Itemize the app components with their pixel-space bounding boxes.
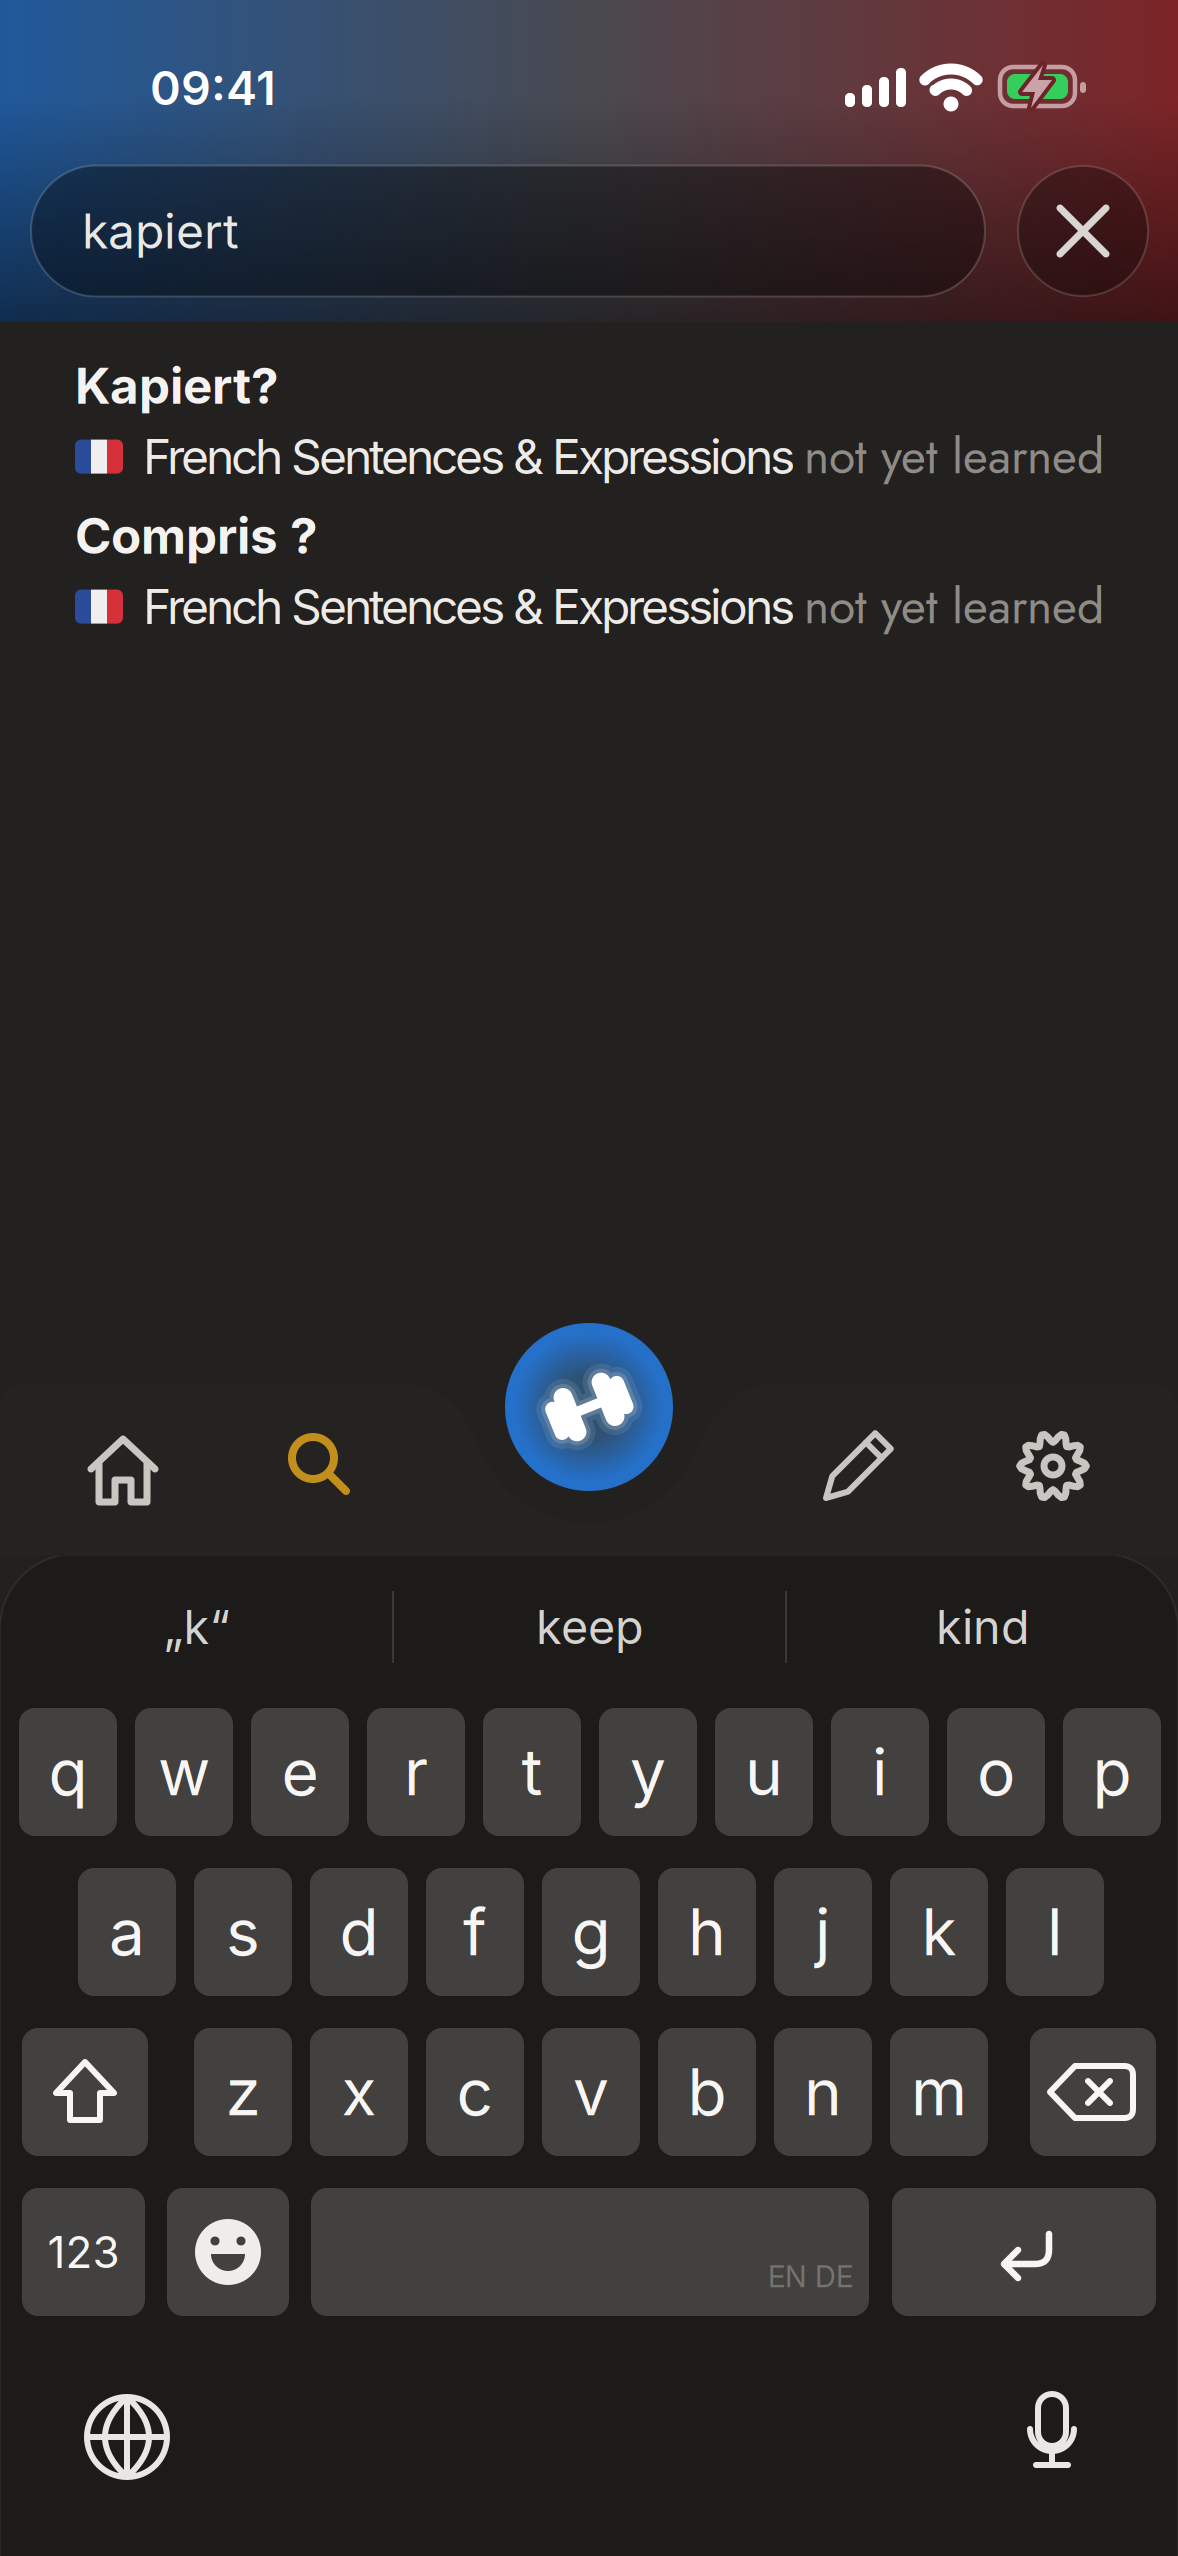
staticText: t	[521, 1734, 542, 1810]
button[interactable]	[892, 2188, 1156, 2316]
button[interactable]: e	[251, 1708, 349, 1836]
staticText: „k“	[163, 1599, 230, 1655]
button[interactable]: f	[426, 1868, 524, 1996]
button[interactable]: v	[542, 2028, 640, 2156]
button[interactable]	[998, 1411, 1108, 1521]
button[interactable]: „k“	[17, 1577, 377, 1677]
staticText: kind	[936, 1599, 1030, 1655]
button[interactable]: x	[310, 2028, 408, 2156]
staticText: q	[48, 1734, 87, 1810]
staticText: d	[339, 1894, 378, 1970]
button[interactable]: kapiert	[31, 165, 985, 296]
button[interactable]: s	[194, 1868, 292, 1996]
staticText: h	[688, 1894, 726, 1970]
button[interactable]: q	[19, 1708, 117, 1836]
button[interactable]: b	[658, 2028, 756, 2156]
staticText: e	[281, 1734, 318, 1810]
staticText: not yet learned	[804, 422, 1104, 491]
button[interactable]: i	[831, 1708, 929, 1836]
staticText: not yet learned	[804, 572, 1104, 641]
staticText: p	[1092, 1734, 1131, 1810]
button[interactable]: kind	[803, 1577, 1163, 1677]
button[interactable]: p	[1063, 1708, 1161, 1836]
button[interactable]: j	[774, 1868, 872, 1996]
button[interactable]	[992, 2377, 1112, 2497]
staticText: i	[872, 1734, 888, 1810]
button[interactable]: a	[78, 1868, 176, 1996]
button[interactable]: m	[890, 2028, 988, 2156]
button[interactable]: w	[135, 1708, 233, 1836]
staticText: l	[1047, 1894, 1063, 1970]
staticText: z	[225, 2054, 260, 2130]
staticText: kapiert	[82, 203, 239, 259]
button[interactable]	[167, 2188, 289, 2316]
button[interactable]: EN DE	[311, 2188, 869, 2316]
button[interactable]	[505, 1323, 673, 1491]
staticText: f	[463, 1894, 487, 1970]
staticText: o	[977, 1734, 1015, 1810]
button[interactable]: n	[774, 2028, 872, 2156]
button[interactable]: t	[483, 1708, 581, 1836]
staticText: r	[404, 1734, 428, 1810]
button[interactable]: keep	[410, 1577, 770, 1677]
staticText: v	[573, 2054, 609, 2130]
button[interactable]	[68, 1414, 178, 1524]
staticText: w	[158, 1734, 210, 1810]
button[interactable]: o	[947, 1708, 1045, 1836]
staticText: n	[804, 2054, 842, 2130]
button[interactable]	[1030, 2028, 1156, 2156]
staticText: French Sentences & Expressions	[143, 428, 795, 485]
button[interactable]: y	[599, 1708, 697, 1836]
button[interactable]: Kapiert?	[0, 357, 1178, 491]
button[interactable]: d	[310, 1868, 408, 1996]
staticText: m	[911, 2054, 967, 2130]
button[interactable]: c	[426, 2028, 524, 2156]
button[interactable]: h	[658, 1868, 756, 1996]
staticText: EN DE	[768, 2259, 853, 2294]
button[interactable]	[802, 1412, 912, 1522]
staticText: Kapiert?	[75, 357, 279, 415]
button[interactable]	[22, 2028, 148, 2156]
button[interactable]: g	[542, 1868, 640, 1996]
staticText: j	[815, 1894, 831, 1970]
button[interactable]: l	[1006, 1868, 1104, 1996]
button[interactable]	[1018, 166, 1148, 296]
staticText: French Sentences & Expressions	[143, 578, 795, 635]
staticText: 123	[47, 2226, 119, 2278]
button[interactable]: k	[890, 1868, 988, 1996]
button[interactable]: r	[367, 1708, 465, 1836]
button[interactable]: z	[194, 2028, 292, 2156]
button[interactable]	[263, 1411, 373, 1521]
staticText: c	[456, 2054, 493, 2130]
staticText: y	[630, 1734, 666, 1810]
staticText: k	[921, 1894, 956, 1970]
staticText: x	[341, 2054, 376, 2130]
button[interactable]: Compris ?	[0, 507, 1178, 641]
button[interactable]: u	[715, 1708, 813, 1836]
staticText: b	[687, 2054, 726, 2130]
staticText: u	[745, 1734, 783, 1810]
staticText: keep	[536, 1599, 644, 1655]
staticText: 09:41	[150, 60, 276, 116]
button[interactable]: 123	[22, 2188, 145, 2316]
staticText: Compris ?	[75, 507, 318, 565]
staticText: a	[109, 1894, 145, 1970]
staticText: s	[226, 1894, 260, 1970]
staticText: g	[571, 1894, 610, 1970]
button[interactable]	[72, 2382, 182, 2492]
